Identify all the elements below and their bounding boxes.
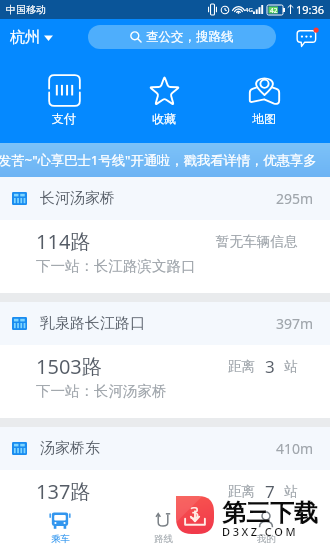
staticText: 3 xyxy=(265,355,275,378)
button[interactable]: 收藏 xyxy=(134,74,194,126)
staticText: 站 xyxy=(284,358,298,375)
button[interactable]: 路线 xyxy=(133,505,193,550)
staticText: 295m xyxy=(276,189,314,208)
button[interactable]: 乳泉路长江路口 xyxy=(0,302,330,418)
staticText: 距离 xyxy=(228,358,256,375)
button[interactable]: 乘车 xyxy=(30,505,90,550)
staticText: 下一站：长江路滨文路口 xyxy=(36,257,196,275)
staticText: 我的 xyxy=(257,533,276,545)
button[interactable]: 长河汤家桥 xyxy=(0,177,330,293)
button[interactable]: Messages xyxy=(294,25,320,51)
staticText: 第三下载 xyxy=(222,498,318,528)
staticText: 114路 xyxy=(36,228,91,255)
button[interactable]: 杭州 xyxy=(7,24,56,51)
staticText: 发苦~"心享巴士1号线"开通啦，戳我看详情，优惠享多 xyxy=(0,151,317,169)
staticText: 397m xyxy=(276,314,314,333)
staticText: D3XZ.COM xyxy=(222,524,299,539)
staticText: 距离 xyxy=(228,483,256,500)
button[interactable]: 汤家桥东 xyxy=(0,427,330,543)
button[interactable]: 查公交，搜路线 xyxy=(88,25,276,49)
staticText: 乳泉路长江路口 xyxy=(40,314,145,333)
staticText: 4G xyxy=(245,6,253,14)
staticText: 410m xyxy=(276,439,314,458)
staticText: 1503路 xyxy=(36,353,102,380)
staticText: 3 xyxy=(190,502,200,524)
staticText: 汤家桥东 xyxy=(40,439,100,458)
staticText: 暂无车辆信息 xyxy=(216,233,298,250)
staticText: 乘车 xyxy=(51,533,70,545)
staticText: 收藏 xyxy=(152,111,176,126)
button[interactable]: 我的 xyxy=(236,505,296,550)
staticText: 中国移动 xyxy=(6,3,46,16)
staticText: 7 xyxy=(265,480,275,503)
staticText: 下一站：长河汤家桥 xyxy=(36,382,167,400)
staticText: 地图 xyxy=(252,111,276,126)
staticText: 杭州 xyxy=(10,28,40,47)
staticText: 查公交，搜路线 xyxy=(146,29,234,45)
staticText: 42 xyxy=(270,6,278,15)
staticText: 长河汤家桥 xyxy=(40,189,115,208)
staticText: 19:36 xyxy=(296,2,325,17)
staticText: 下一站：彩虹城 xyxy=(36,507,138,525)
staticText: 站 xyxy=(284,483,298,500)
staticText: 支付 xyxy=(52,111,76,126)
button[interactable]: 地图 xyxy=(234,74,294,126)
staticText: 路线 xyxy=(154,533,173,545)
button[interactable]: 发苦~"心享巴士1号线"开通啦，戳我看详情，优惠享多 xyxy=(0,143,330,177)
button[interactable]: 支付 xyxy=(34,74,94,126)
staticText: 137路 xyxy=(36,478,91,505)
